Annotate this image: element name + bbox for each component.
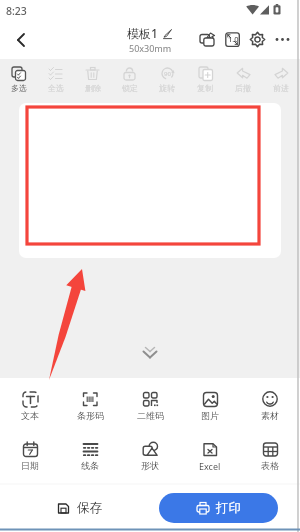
staticText: 线条 [81, 460, 99, 471]
staticText: 图片 [201, 410, 219, 421]
button[interactable]: 多选 [0, 59, 37, 100]
button[interactable]: Collapse [139, 342, 161, 364]
staticText: 1.0 [228, 34, 239, 44]
staticText: 文本 [21, 410, 39, 421]
staticText: 全选 [48, 83, 64, 93]
button[interactable]: Excel [180, 441, 240, 472]
button[interactable]: 全选 [37, 59, 74, 100]
button[interactable]: 条形码 [60, 391, 120, 421]
button[interactable]: Rename [162, 28, 173, 39]
staticText: 旋转 [159, 83, 175, 93]
button[interactable]: 90 [148, 59, 186, 100]
staticText: 删除 [85, 83, 101, 93]
button[interactable]: 形状 [120, 441, 180, 471]
staticText: 8:23 [6, 4, 27, 18]
staticText: 条形码 [77, 410, 104, 421]
button[interactable]: Back [8, 28, 32, 52]
button[interactable]: 图片 [180, 391, 240, 421]
staticText: 90 [164, 70, 171, 78]
staticText: 形状 [141, 460, 159, 471]
staticText: 复制 [197, 83, 213, 93]
button[interactable]: Zoom level [220, 27, 245, 52]
staticText: 保存 [77, 500, 102, 516]
staticText: 多选 [11, 83, 27, 93]
staticText: Excel [199, 460, 221, 472]
button[interactable]: 保存 [0, 484, 159, 532]
staticText: 素材 [261, 410, 279, 421]
button[interactable]: 二维码 [120, 391, 180, 421]
button[interactable]: 删除 [74, 59, 111, 100]
button[interactable]: 日期 [0, 441, 60, 471]
staticText: 二维码 [137, 410, 164, 421]
staticText: 打印 [216, 500, 241, 516]
button[interactable]: 复制 [186, 59, 224, 100]
staticText: 日期 [21, 460, 39, 471]
staticText: 锁定 [122, 83, 138, 93]
button[interactable]: Settings [245, 27, 270, 52]
staticText: 表格 [261, 460, 279, 471]
button[interactable]: 素材 [240, 391, 300, 421]
button[interactable]: 表格 [240, 441, 300, 471]
staticText: 50x30mm [129, 42, 172, 54]
button[interactable]: 前进 [262, 59, 300, 100]
button[interactable]: 后撤 [224, 59, 262, 100]
staticText: 前进 [273, 83, 289, 93]
button[interactable]: More options [270, 27, 295, 52]
button[interactable]: Layers [195, 27, 220, 52]
button[interactable]: 线条 [60, 441, 120, 471]
button[interactable]: 文本 [0, 391, 60, 421]
button[interactable]: 打印 [159, 493, 278, 523]
button[interactable]: 锁定 [111, 59, 148, 100]
staticText: 后撤 [235, 83, 251, 93]
staticText: 模板1 [127, 25, 158, 41]
